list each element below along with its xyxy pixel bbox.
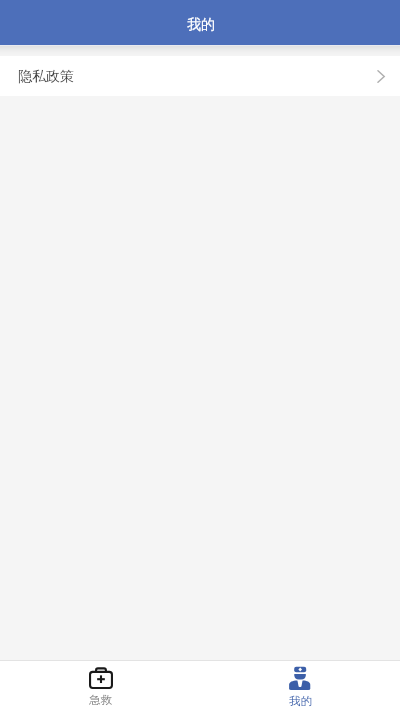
button[interactable]: 我的 [200, 660, 400, 711]
button[interactable]: 急救 [0, 660, 200, 711]
staticText: 我的 [289, 694, 312, 708]
staticText: 我的 [187, 16, 215, 34]
other: 我的 [288, 666, 312, 690]
other: 急救 [89, 667, 113, 689]
staticText: 隐私政策 [18, 68, 74, 86]
staticText: 急救 [89, 693, 112, 707]
button[interactable]: 隐私政策 [0, 56, 400, 96]
